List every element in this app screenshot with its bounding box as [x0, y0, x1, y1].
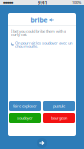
staticText: bourgeon: [51, 115, 67, 121]
staticText: On pourrait les soudoyer avec un chou mo…: [15, 40, 72, 49]
button[interactable]: Next: [37, 138, 47, 148]
staticText: pustule: [53, 103, 65, 109]
staticText: ●●●●●: [3, 1, 13, 4]
button[interactable]: soudoyer: [9, 113, 41, 123]
staticText: faire exploser: [13, 103, 37, 109]
staticText: I bet you could bribe them with a curly …: [11, 29, 66, 37]
staticText: 9:41: [37, 0, 47, 6]
button[interactable]: bourgeon: [43, 113, 75, 123]
staticText: bribe: [30, 16, 47, 24]
button[interactable]: faire exploser: [9, 101, 41, 111]
staticText: 100%: [72, 0, 81, 5]
staticText: soudoyer: [17, 115, 33, 121]
button[interactable]: pustule: [43, 101, 75, 111]
